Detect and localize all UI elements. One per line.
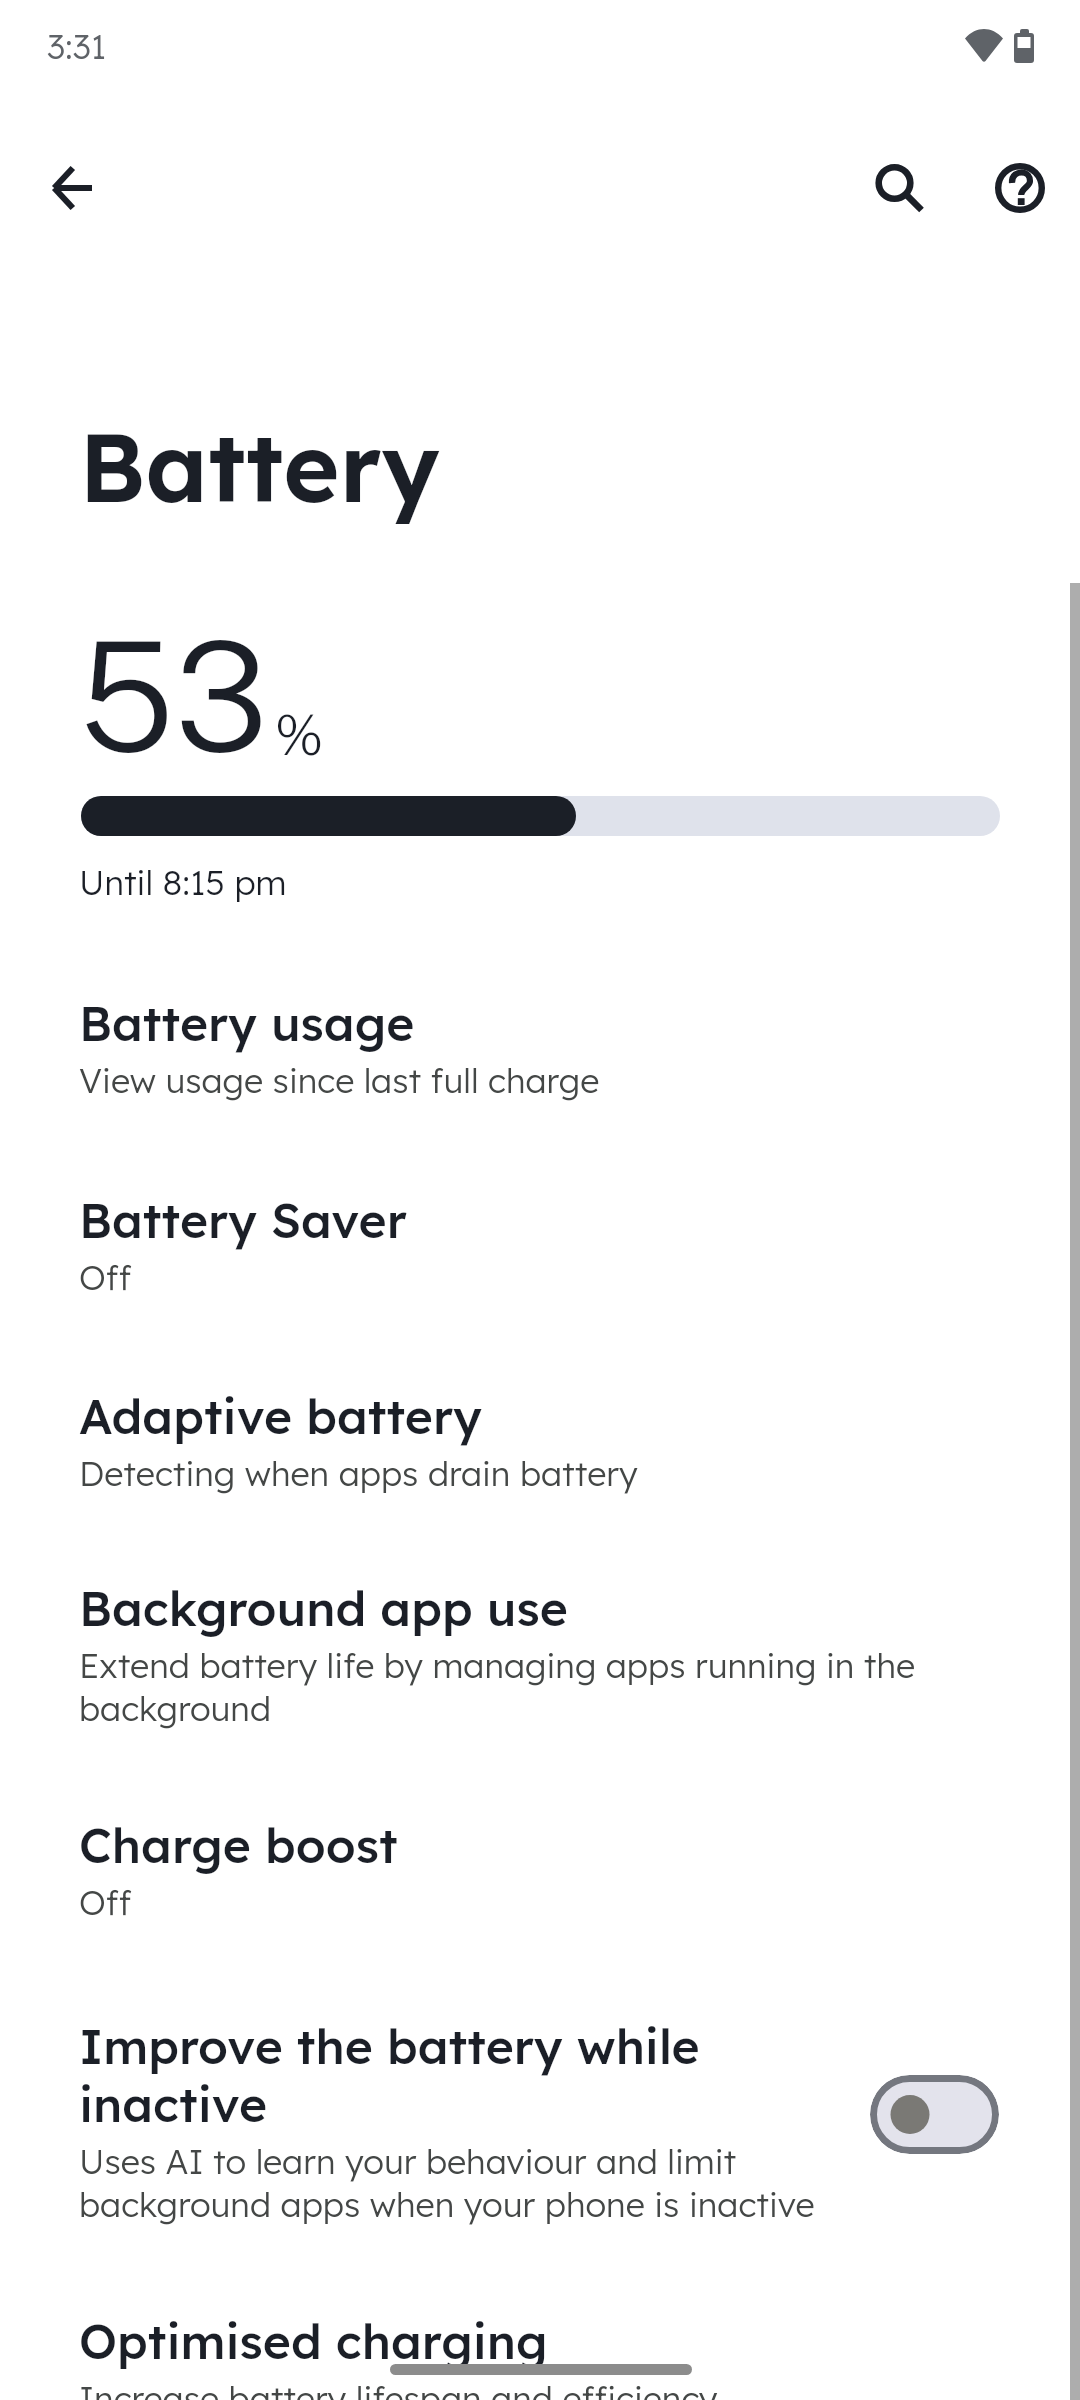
staticText: Extend battery life by managing apps run… — [79, 1644, 924, 1730]
staticText: Off — [79, 1256, 979, 1299]
staticText: Battery — [79, 414, 440, 524]
button[interactable]: Adaptive battery — [0, 1388, 1080, 1528]
button[interactable]: Background app use — [0, 1580, 1080, 1775]
staticText: Uses AI to learn your behaviour and limi… — [79, 2140, 924, 2226]
button[interactable]: Help — [972, 140, 1068, 236]
button[interactable]: Battery usage — [0, 995, 1080, 1135]
staticText: Until 8:15 pm — [79, 860, 287, 904]
staticText: Detecting when apps drain battery — [79, 1452, 979, 1495]
staticText: Adaptive battery — [79, 1388, 979, 1446]
button[interactable]: Improve the battery while inactive — [0, 2018, 1080, 2278]
button[interactable]: Search — [852, 140, 948, 236]
button[interactable]: Back — [24, 140, 120, 236]
staticText: 3:31 — [47, 24, 107, 68]
staticText: Battery Saver — [79, 1192, 979, 1250]
staticText: Battery usage — [79, 995, 979, 1053]
staticText: View usage since last full charge — [79, 1059, 979, 1102]
staticText: Off — [79, 1881, 979, 1924]
button[interactable]: Charge boost — [0, 1817, 1080, 1987]
button[interactable]: Battery Saver — [0, 1192, 1080, 1332]
staticText: Charge boost — [79, 1817, 979, 1875]
staticText: Improve the battery while inactive — [79, 2018, 779, 2134]
staticText: 53 — [79, 597, 269, 787]
button[interactable]: Optimised charging — [0, 2313, 1080, 2400]
staticText: % — [275, 703, 324, 767]
staticText: Optimised charging — [79, 2313, 979, 2371]
button[interactable]: Improve the battery while inactive toggl… — [870, 2075, 999, 2154]
staticText: Background app use — [79, 1580, 979, 1638]
staticText: Increase battery lifespan and efficiency — [79, 2377, 979, 2400]
